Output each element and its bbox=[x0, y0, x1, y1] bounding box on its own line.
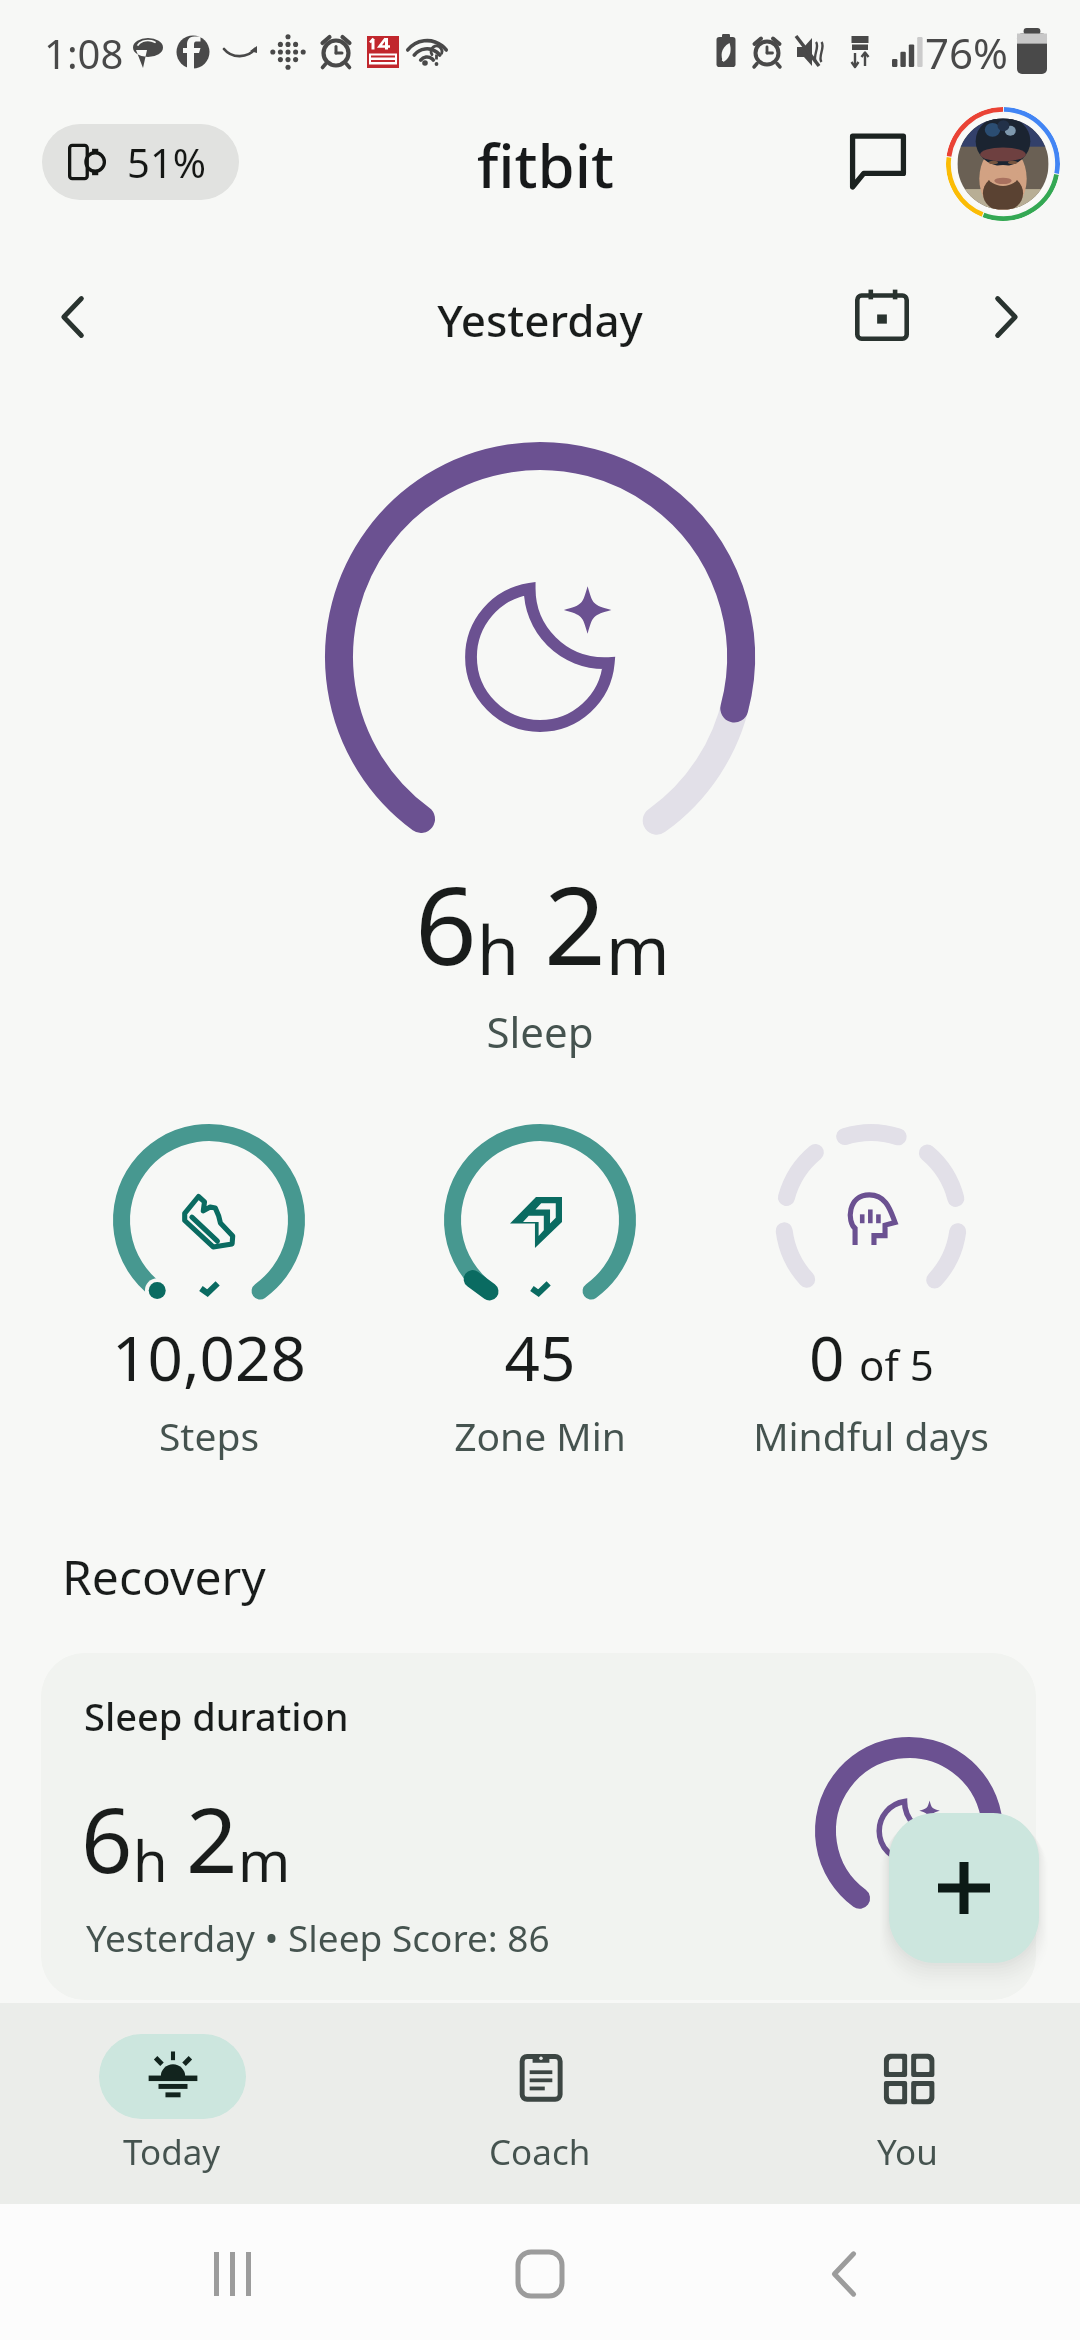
staticText: fitbit bbox=[477, 124, 614, 206]
button[interactable]: Today bbox=[62, 2003, 282, 2204]
staticText: h bbox=[133, 1822, 168, 1898]
button[interactable]: Calendar bbox=[837, 270, 927, 360]
staticText: Sleep bbox=[340, 1003, 740, 1060]
button[interactable]: Coach bbox=[430, 2003, 650, 2204]
staticText: Yesterday • Sleep Score: 86 bbox=[86, 1912, 550, 1962]
staticText: 76% bbox=[925, 24, 1008, 81]
staticText: Coach bbox=[489, 2128, 591, 2176]
staticText: h bbox=[477, 902, 520, 995]
button[interactable]: You bbox=[797, 2003, 1017, 2204]
button[interactable]: Next day bbox=[961, 272, 1051, 362]
staticText: Today bbox=[123, 2128, 221, 2176]
staticText: You bbox=[877, 2128, 938, 2176]
button[interactable]: Add bbox=[889, 1813, 1039, 1963]
staticText: Steps bbox=[9, 1409, 409, 1462]
staticText: Zone Min bbox=[340, 1409, 740, 1462]
button[interactable]: Home bbox=[516, 2250, 564, 2298]
staticText: 10,028 bbox=[9, 1315, 409, 1399]
button[interactable]: Zone Minutes bbox=[444, 1124, 636, 1316]
staticText: 6 bbox=[81, 1777, 133, 1900]
staticText: m bbox=[238, 1822, 291, 1898]
button[interactable]: Steps bbox=[113, 1124, 305, 1316]
button[interactable]: 51% bbox=[42, 124, 239, 200]
staticText: 0 bbox=[809, 1315, 845, 1399]
staticText: 1:08 bbox=[44, 26, 124, 80]
staticText: Recovery bbox=[62, 1544, 266, 1609]
button[interactable]: Sleep duration bbox=[41, 1653, 1036, 2000]
staticText: 2 bbox=[186, 1777, 238, 1900]
staticText: Mindful days bbox=[671, 1409, 1071, 1462]
staticText: Sleep duration bbox=[84, 1690, 349, 1742]
staticText: 2 bbox=[544, 850, 606, 997]
staticText: m bbox=[606, 902, 670, 995]
staticText: Yesterday bbox=[340, 290, 740, 350]
button[interactable]: Recents bbox=[210, 2250, 258, 2298]
button[interactable]: Back bbox=[820, 2250, 868, 2298]
staticText: 6 bbox=[415, 850, 477, 997]
staticText: of 5 bbox=[859, 1336, 934, 1393]
staticText: 51% bbox=[127, 135, 206, 189]
button[interactable]: Messages bbox=[832, 115, 924, 207]
button[interactable]: Previous day bbox=[28, 272, 118, 362]
staticText: 45 bbox=[340, 1315, 740, 1399]
button[interactable]: Mindful days bbox=[775, 1124, 967, 1316]
button[interactable]: Profile bbox=[946, 107, 1060, 221]
